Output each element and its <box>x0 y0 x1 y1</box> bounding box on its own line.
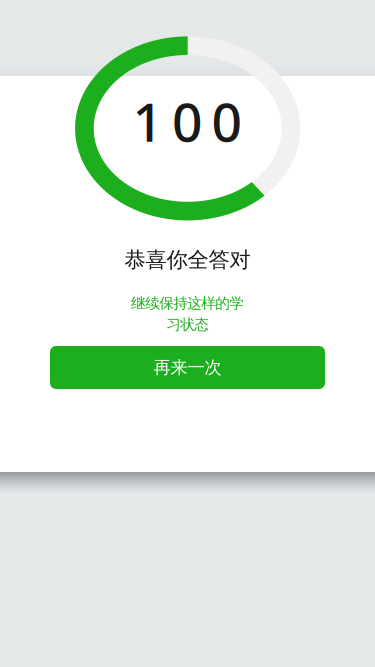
button[interactable]: 再来一次 <box>50 346 325 389</box>
staticText: 继续保持这样的学 习状态 <box>131 294 244 334</box>
staticText: 恭喜你全答对 <box>124 247 250 273</box>
staticText: 再来一次 <box>153 357 221 378</box>
staticText: 100 <box>132 86 242 156</box>
